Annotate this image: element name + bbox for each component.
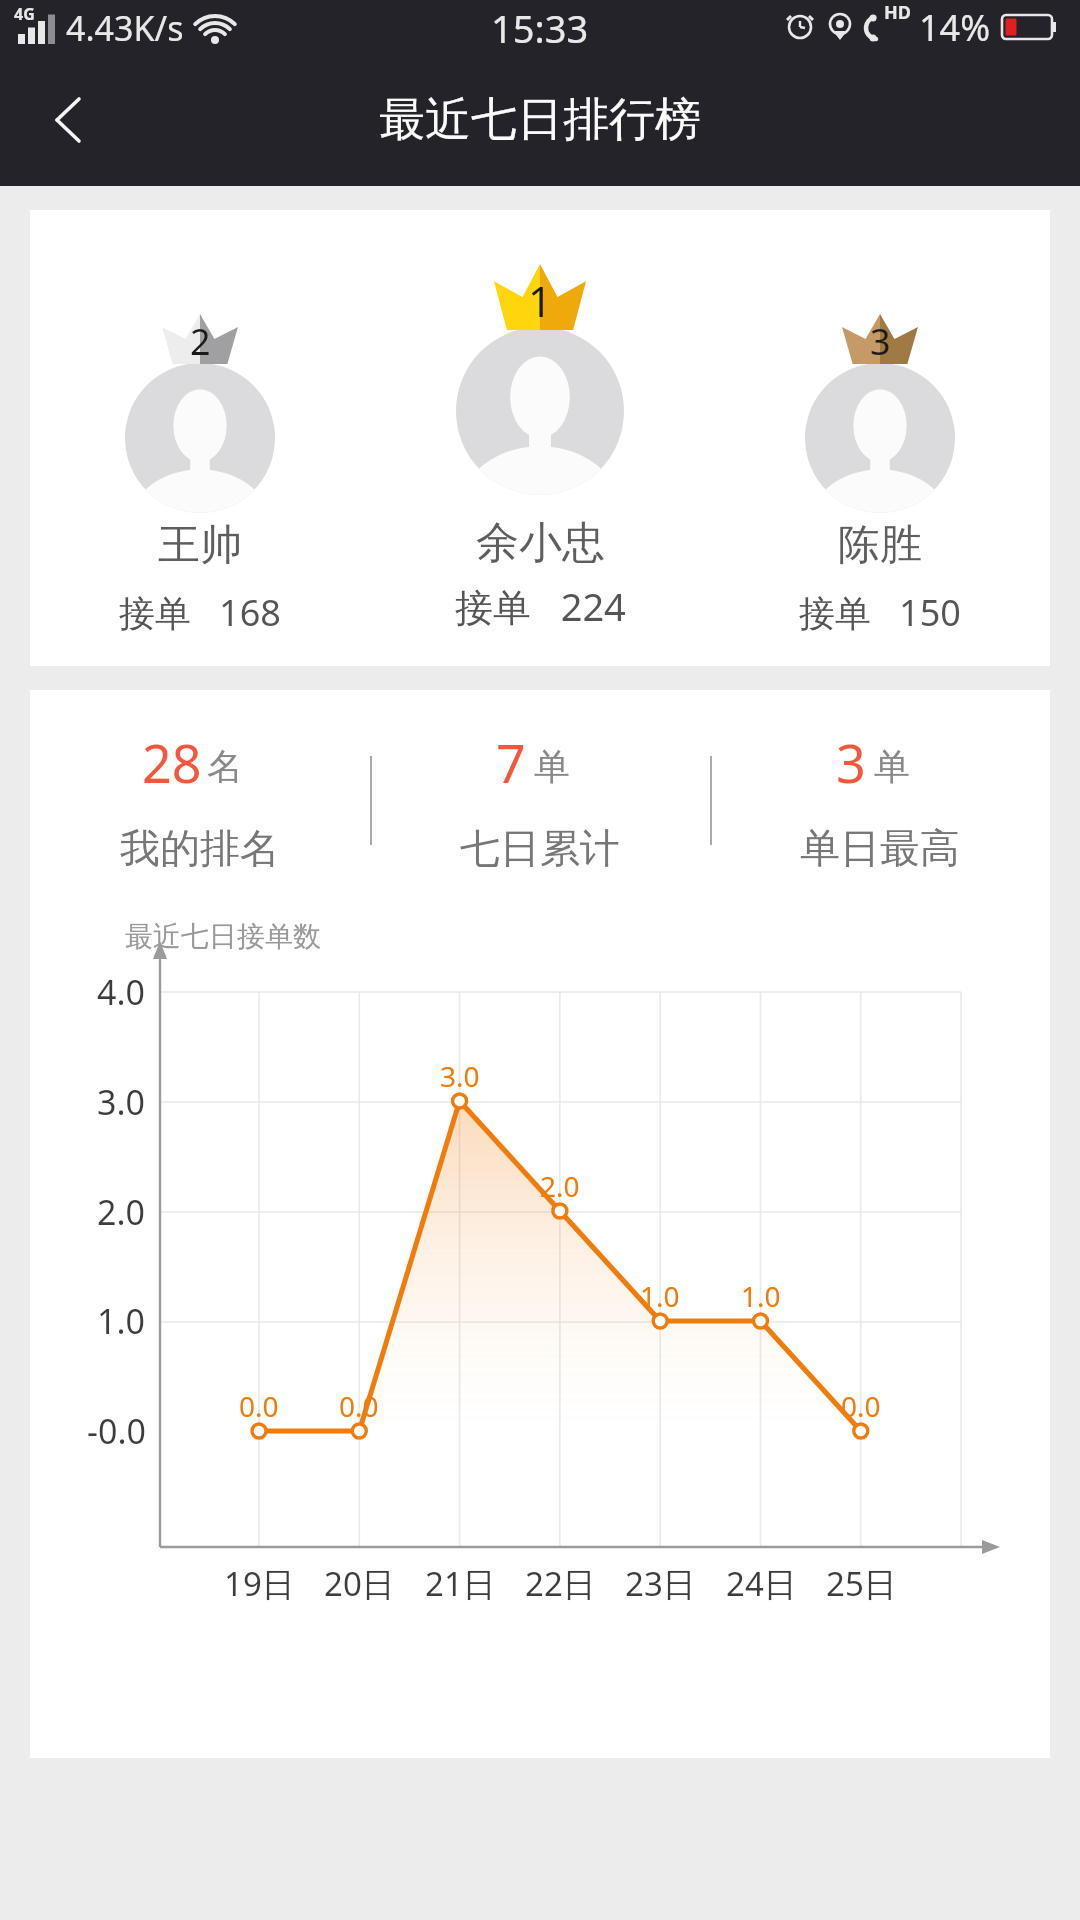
staticText: 单 xyxy=(534,744,570,789)
staticText: 4.43K/s xyxy=(66,5,184,51)
staticText: 3 xyxy=(870,317,891,366)
staticText: 3 xyxy=(836,727,866,798)
staticText: 21日 xyxy=(425,1561,496,1606)
staticText: 最近七日排行榜 xyxy=(379,91,701,149)
staticText: 1.0 xyxy=(97,1298,146,1344)
button[interactable] xyxy=(25,78,115,164)
staticText: 单日最高 xyxy=(800,823,960,873)
staticText: 14% xyxy=(919,3,991,52)
staticText: 接单 150 xyxy=(799,588,961,637)
staticText: 王帅 xyxy=(158,519,242,572)
staticText: 1.0 xyxy=(741,1277,781,1315)
staticText: 0.0 xyxy=(339,1387,379,1425)
staticText: 0.0 xyxy=(841,1387,881,1425)
staticText: 24日 xyxy=(726,1561,797,1606)
staticText: 4G xyxy=(14,3,35,25)
staticText: 2.0 xyxy=(97,1189,146,1235)
staticText: 25日 xyxy=(826,1561,897,1606)
staticText: -0.0 xyxy=(87,1408,146,1454)
staticText: 3.0 xyxy=(440,1057,480,1095)
staticText: HD xyxy=(884,0,911,25)
staticText: 19日 xyxy=(224,1561,295,1606)
staticText: 我的排名 xyxy=(120,823,280,873)
staticText: 七日累计 xyxy=(460,823,620,873)
staticText: 20日 xyxy=(324,1561,395,1606)
staticText: 接单 224 xyxy=(455,580,626,632)
staticText: 4.0 xyxy=(97,969,146,1015)
staticText: 28 xyxy=(142,727,202,798)
staticText: 22日 xyxy=(525,1561,596,1606)
staticText: 2 xyxy=(190,317,211,366)
staticText: 7 xyxy=(496,727,526,798)
staticText: 最近七日接单数 xyxy=(125,919,321,954)
staticText: 23日 xyxy=(625,1561,696,1606)
staticText: 0.0 xyxy=(239,1387,279,1425)
staticText: 3.0 xyxy=(97,1079,146,1125)
staticText: 陈胜 xyxy=(838,519,922,572)
staticText: 单 xyxy=(874,744,910,789)
staticText: 1.0 xyxy=(640,1277,680,1315)
staticText: 1 xyxy=(528,272,553,329)
staticText: 2.0 xyxy=(540,1167,580,1205)
staticText: 接单 168 xyxy=(119,588,281,637)
staticText: 余小忠 xyxy=(476,516,605,570)
staticText: 名 xyxy=(207,744,243,789)
staticText: 15:33 xyxy=(491,2,589,54)
